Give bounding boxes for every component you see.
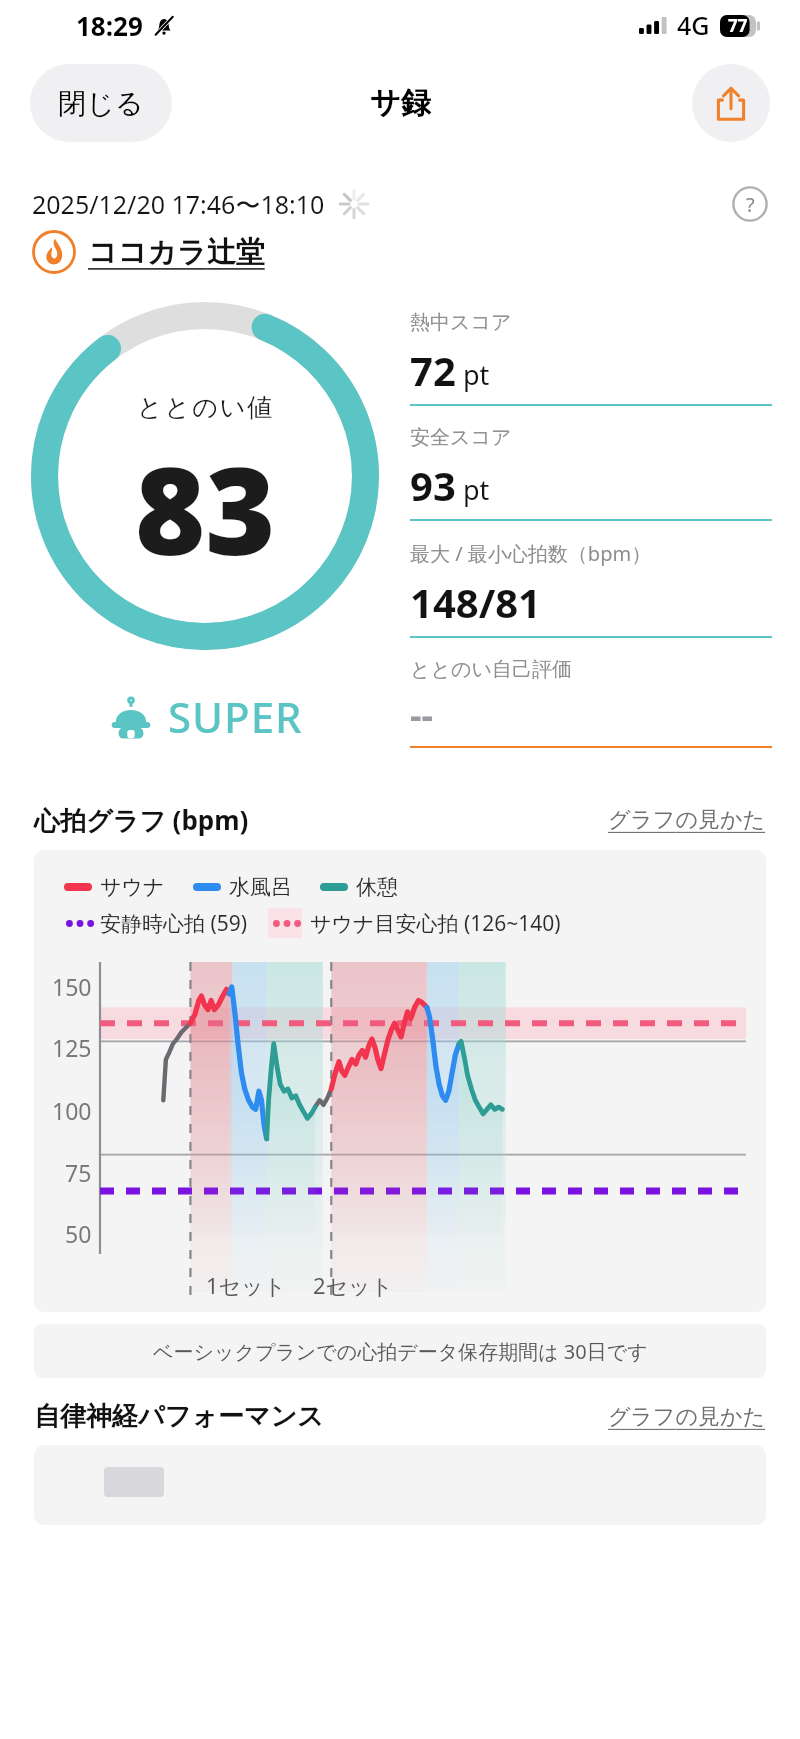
- staticText: 4G: [677, 8, 710, 42]
- staticText: 安全スコア: [410, 425, 512, 450]
- staticText: SUPER: [168, 688, 303, 745]
- button[interactable]: Help: [732, 186, 768, 222]
- staticText: 最大 / 最小心拍数（bpm）: [410, 540, 652, 567]
- staticText: 100: [52, 1095, 92, 1126]
- staticText: 熱中スコア: [410, 310, 512, 335]
- staticText: 2025/12/20 17:46〜18:10: [32, 187, 325, 221]
- staticText: サウナ: [100, 874, 165, 900]
- staticText: 93: [410, 458, 456, 512]
- staticText: グラフの見かた: [608, 806, 766, 834]
- staticText: 2セット: [313, 1270, 394, 1300]
- button[interactable]: Share: [692, 64, 770, 142]
- staticText: ココカラ辻堂: [88, 234, 265, 271]
- staticText: ととのい自己評価: [410, 657, 572, 682]
- staticText: pt: [463, 356, 490, 393]
- staticText: 休憩: [356, 874, 398, 900]
- staticText: グラフの見かた: [608, 1403, 766, 1431]
- staticText: 水風呂: [229, 874, 292, 900]
- button[interactable]: ココカラ辻堂: [32, 230, 768, 274]
- staticText: 125: [52, 1032, 92, 1063]
- staticText: 150: [52, 971, 92, 1002]
- staticText: 1セット: [206, 1270, 287, 1300]
- staticText: 18:29: [76, 8, 143, 43]
- staticText: 心拍グラフ (bpm): [34, 802, 249, 838]
- staticText: ?: [746, 191, 755, 218]
- button[interactable]: 閉じる: [30, 64, 172, 142]
- staticText: 自律神経パフォーマンス: [34, 1400, 324, 1433]
- button[interactable]: グラフの見かた: [608, 806, 766, 834]
- staticText: ととのい値: [137, 392, 275, 423]
- staticText: 閉じる: [58, 86, 144, 121]
- staticText: サ録: [370, 84, 431, 122]
- staticText: 148/81: [410, 575, 541, 629]
- staticText: 75: [65, 1157, 92, 1188]
- staticText: 50: [65, 1218, 92, 1249]
- button[interactable]: グラフの見かた: [608, 1403, 766, 1431]
- staticText: 72: [410, 343, 456, 397]
- staticText: サウナ目安心拍 (126~140): [310, 909, 561, 938]
- staticText: 安静時心拍 (59): [100, 909, 248, 938]
- staticText: pt: [463, 471, 490, 508]
- staticText: ベーシックプランでの心拍データ保存期間は 30日です: [153, 1338, 648, 1365]
- staticText: --: [410, 690, 434, 739]
- staticText: 83: [135, 427, 276, 590]
- staticText: 77: [728, 14, 748, 37]
